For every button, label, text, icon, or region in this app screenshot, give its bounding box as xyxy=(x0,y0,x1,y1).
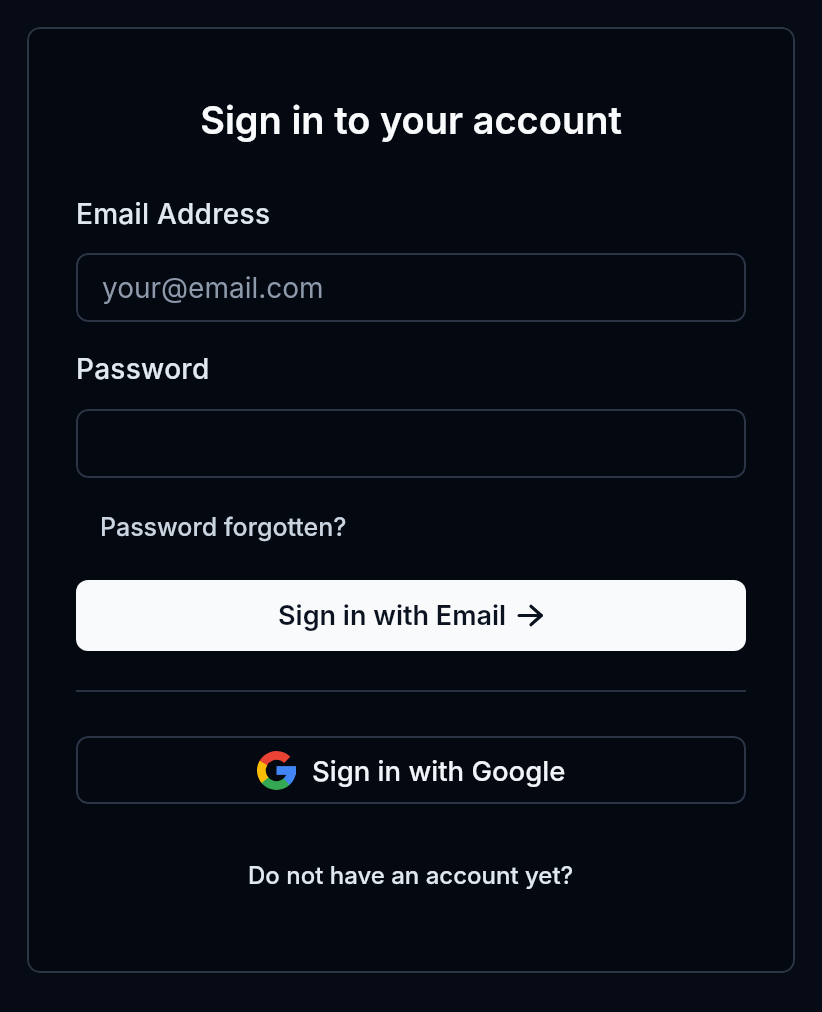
button[interactable]: your@email.com xyxy=(76,253,746,322)
button[interactable]: Sign in with Google xyxy=(76,736,746,804)
button[interactable] xyxy=(76,409,746,478)
button[interactable]: Password forgotten? xyxy=(100,512,347,542)
staticText: Email Address xyxy=(76,197,271,229)
button[interactable]: Sign in with Email xyxy=(76,580,746,651)
button[interactable]: Do not have an account yet? xyxy=(76,859,746,891)
staticText: Password forgotten? xyxy=(100,512,347,542)
staticText: Sign in with Google xyxy=(312,754,566,787)
staticText: Sign in to your account xyxy=(200,97,622,143)
staticText: your@email.com xyxy=(102,271,324,305)
staticText: Password xyxy=(76,352,210,384)
staticText: Sign in with Email xyxy=(278,599,507,632)
staticText: Do not have an account yet? xyxy=(248,861,574,890)
